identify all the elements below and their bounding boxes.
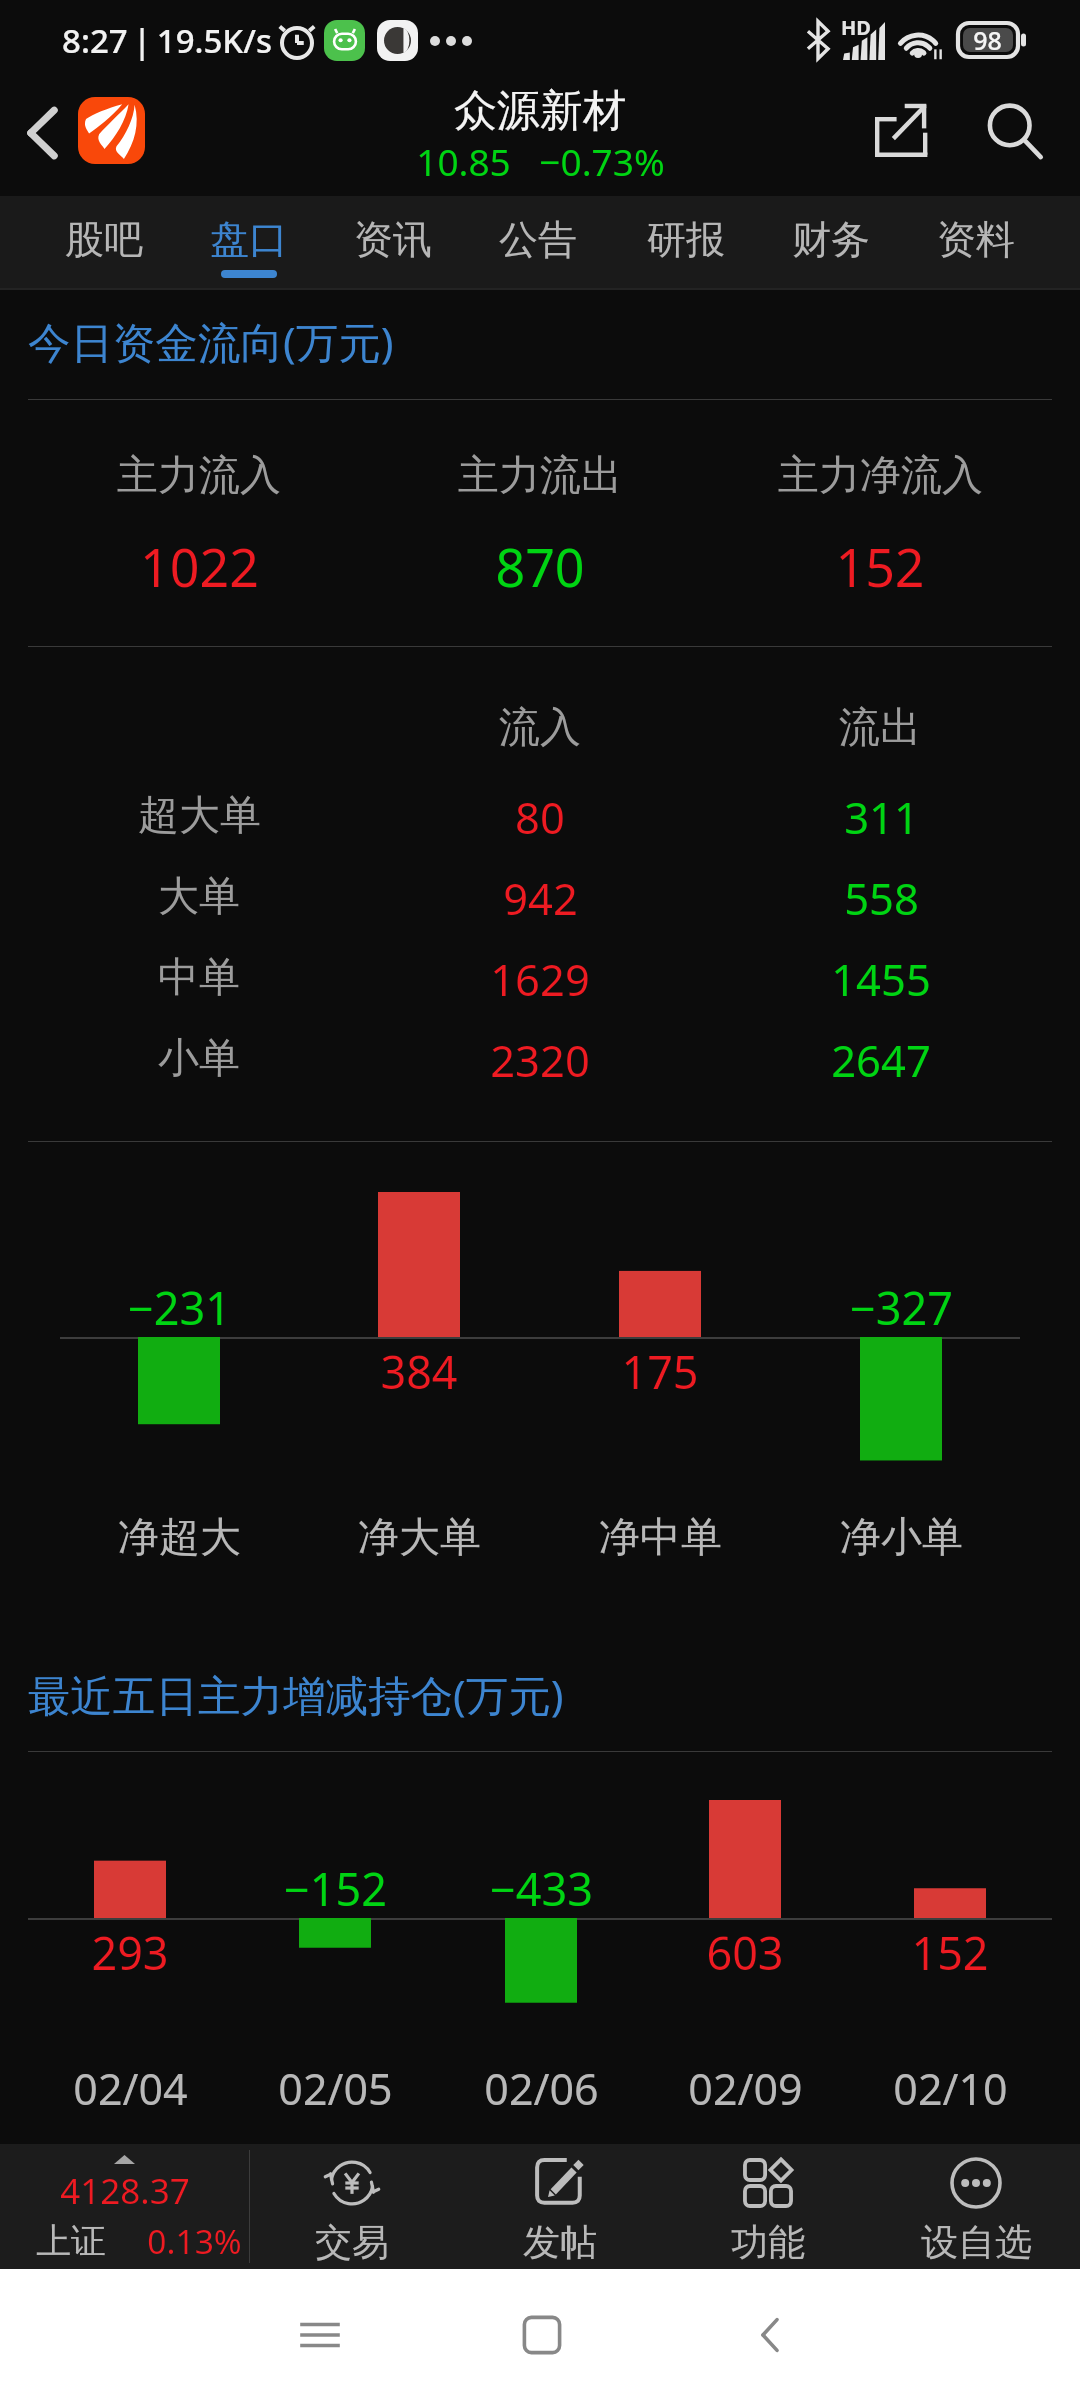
staticText: 最近五日主力增减持仓(万元) <box>28 1666 564 1724</box>
staticText: 超大单 <box>138 790 261 842</box>
staticText: 财务 <box>792 215 870 264</box>
button[interactable]: 资讯 <box>321 196 465 290</box>
staticText: 942 <box>503 868 578 927</box>
staticText: 1022 <box>140 531 259 602</box>
staticText: 盘口 <box>210 215 288 264</box>
button[interactable]: Back <box>720 2269 820 2400</box>
staticText: 02/04 <box>73 2059 188 2118</box>
staticText: 净中单 <box>599 1512 722 1564</box>
button[interactable]: Recents <box>270 2269 370 2400</box>
button[interactable]: App home <box>78 97 145 164</box>
button[interactable]: 财务 <box>759 196 903 290</box>
staticText: 152 <box>835 531 925 602</box>
staticText: 净大单 <box>358 1512 481 1564</box>
staticText: 交易 <box>315 2219 389 2265</box>
button[interactable]: 功能 <box>664 2144 872 2269</box>
staticText: 02/06 <box>484 2059 599 2118</box>
staticText: 流出 <box>839 702 921 754</box>
button[interactable]: 发帖 <box>456 2144 664 2269</box>
staticText: 净超大 <box>118 1512 241 1564</box>
staticText: 293 <box>91 1922 169 1983</box>
staticText: 02/05 <box>278 2059 393 2118</box>
staticText: 主力流入 <box>117 450 281 502</box>
staticText: 股吧 <box>65 215 143 264</box>
staticText: 8:27 | 19.5K/s <box>62 18 272 63</box>
staticText: 98 <box>973 23 1002 57</box>
staticText: −327 <box>850 1277 953 1338</box>
staticText: 0.13% <box>147 2218 242 2264</box>
staticText: 功能 <box>731 2219 805 2265</box>
staticText: 研报 <box>647 215 725 264</box>
staticText: 384 <box>380 1341 458 1402</box>
staticText: 主力流出 <box>458 450 622 502</box>
staticText: 发帖 <box>523 2219 597 2265</box>
staticText: 主力净流入 <box>778 450 983 502</box>
staticText: 资料 <box>937 215 1015 264</box>
button[interactable]: 研报 <box>614 196 758 290</box>
button[interactable]: Search <box>960 77 1070 187</box>
staticText: 4128.37 <box>60 2167 190 2213</box>
button[interactable]: 公告 <box>466 196 610 290</box>
button[interactable]: 4128.37 <box>0 2144 249 2269</box>
staticText: 公告 <box>499 215 577 264</box>
button[interactable]: 盘口 <box>177 196 321 290</box>
staticText: 02/10 <box>893 2059 1008 2118</box>
staticText: 1455 <box>831 949 931 1008</box>
staticText: 311 <box>844 787 919 846</box>
button[interactable]: Home <box>492 2269 592 2400</box>
staticText: 中单 <box>158 952 240 1004</box>
staticText: 152 <box>911 1922 989 1983</box>
staticText: −433 <box>490 1858 593 1919</box>
button[interactable]: Share <box>847 75 957 185</box>
staticText: 603 <box>706 1922 784 1983</box>
staticText: 小单 <box>158 1033 240 1085</box>
staticText: 1629 <box>490 949 590 1008</box>
staticText: 资讯 <box>354 215 432 264</box>
staticText: HD <box>841 14 871 41</box>
staticText: −0.73% <box>539 136 665 184</box>
staticText: 净小单 <box>840 1512 963 1564</box>
staticText: 众源新材 <box>454 84 626 138</box>
button[interactable]: 设自选 <box>872 2144 1080 2269</box>
staticText: 今日资金流向(万元) <box>28 313 394 371</box>
staticText: 设自选 <box>921 2219 1032 2265</box>
staticText: −152 <box>284 1858 387 1919</box>
button[interactable]: 资料 <box>904 196 1048 290</box>
button[interactable]: Back <box>6 80 78 196</box>
staticText: 80 <box>515 787 565 846</box>
staticText: 流入 <box>499 702 581 754</box>
staticText: 2320 <box>490 1030 590 1089</box>
staticText: 大单 <box>158 871 240 923</box>
staticText: 10.85 <box>416 136 511 184</box>
button[interactable]: 交易 <box>248 2144 456 2269</box>
staticText: 02/09 <box>688 2059 803 2118</box>
staticText: 558 <box>844 868 919 927</box>
staticText: −231 <box>128 1277 231 1338</box>
staticText: 175 <box>621 1341 699 1402</box>
staticText: 上证 <box>36 2219 106 2263</box>
button[interactable]: 股吧 <box>32 196 176 290</box>
staticText: 2647 <box>831 1030 931 1089</box>
staticText: 870 <box>495 531 585 602</box>
